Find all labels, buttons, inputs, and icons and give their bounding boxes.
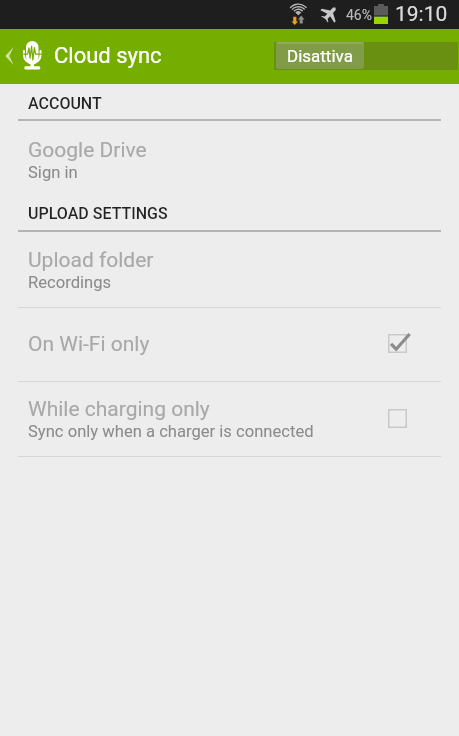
button[interactable]: Navigate up (0, 29, 180, 84)
button[interactable]: On Wi-Fi only (0, 308, 459, 381)
staticText: 19:10 (395, 2, 448, 27)
staticText: Sign in (28, 163, 78, 182)
button[interactable]: While charging only (0, 382, 459, 456)
button[interactable]: Disattiva (276, 42, 364, 69)
staticText: ACCOUNT (28, 94, 102, 113)
staticText: Disattiva (287, 46, 353, 66)
staticText: Upload folder (28, 248, 154, 273)
staticText: Google Drive (28, 138, 147, 163)
button[interactable]: Upload folder (0, 232, 459, 307)
staticText: While charging only (28, 397, 210, 422)
staticText: On Wi-Fi only (28, 332, 150, 357)
button[interactable]: Google Drive (0, 121, 459, 192)
staticText: Recordings (28, 273, 112, 292)
staticText: UPLOAD SETTINGS (28, 204, 168, 223)
staticText: 46% (346, 7, 372, 23)
staticText: Cloud sync (54, 43, 162, 69)
staticText: Sync only when a charger is connected (28, 422, 314, 441)
